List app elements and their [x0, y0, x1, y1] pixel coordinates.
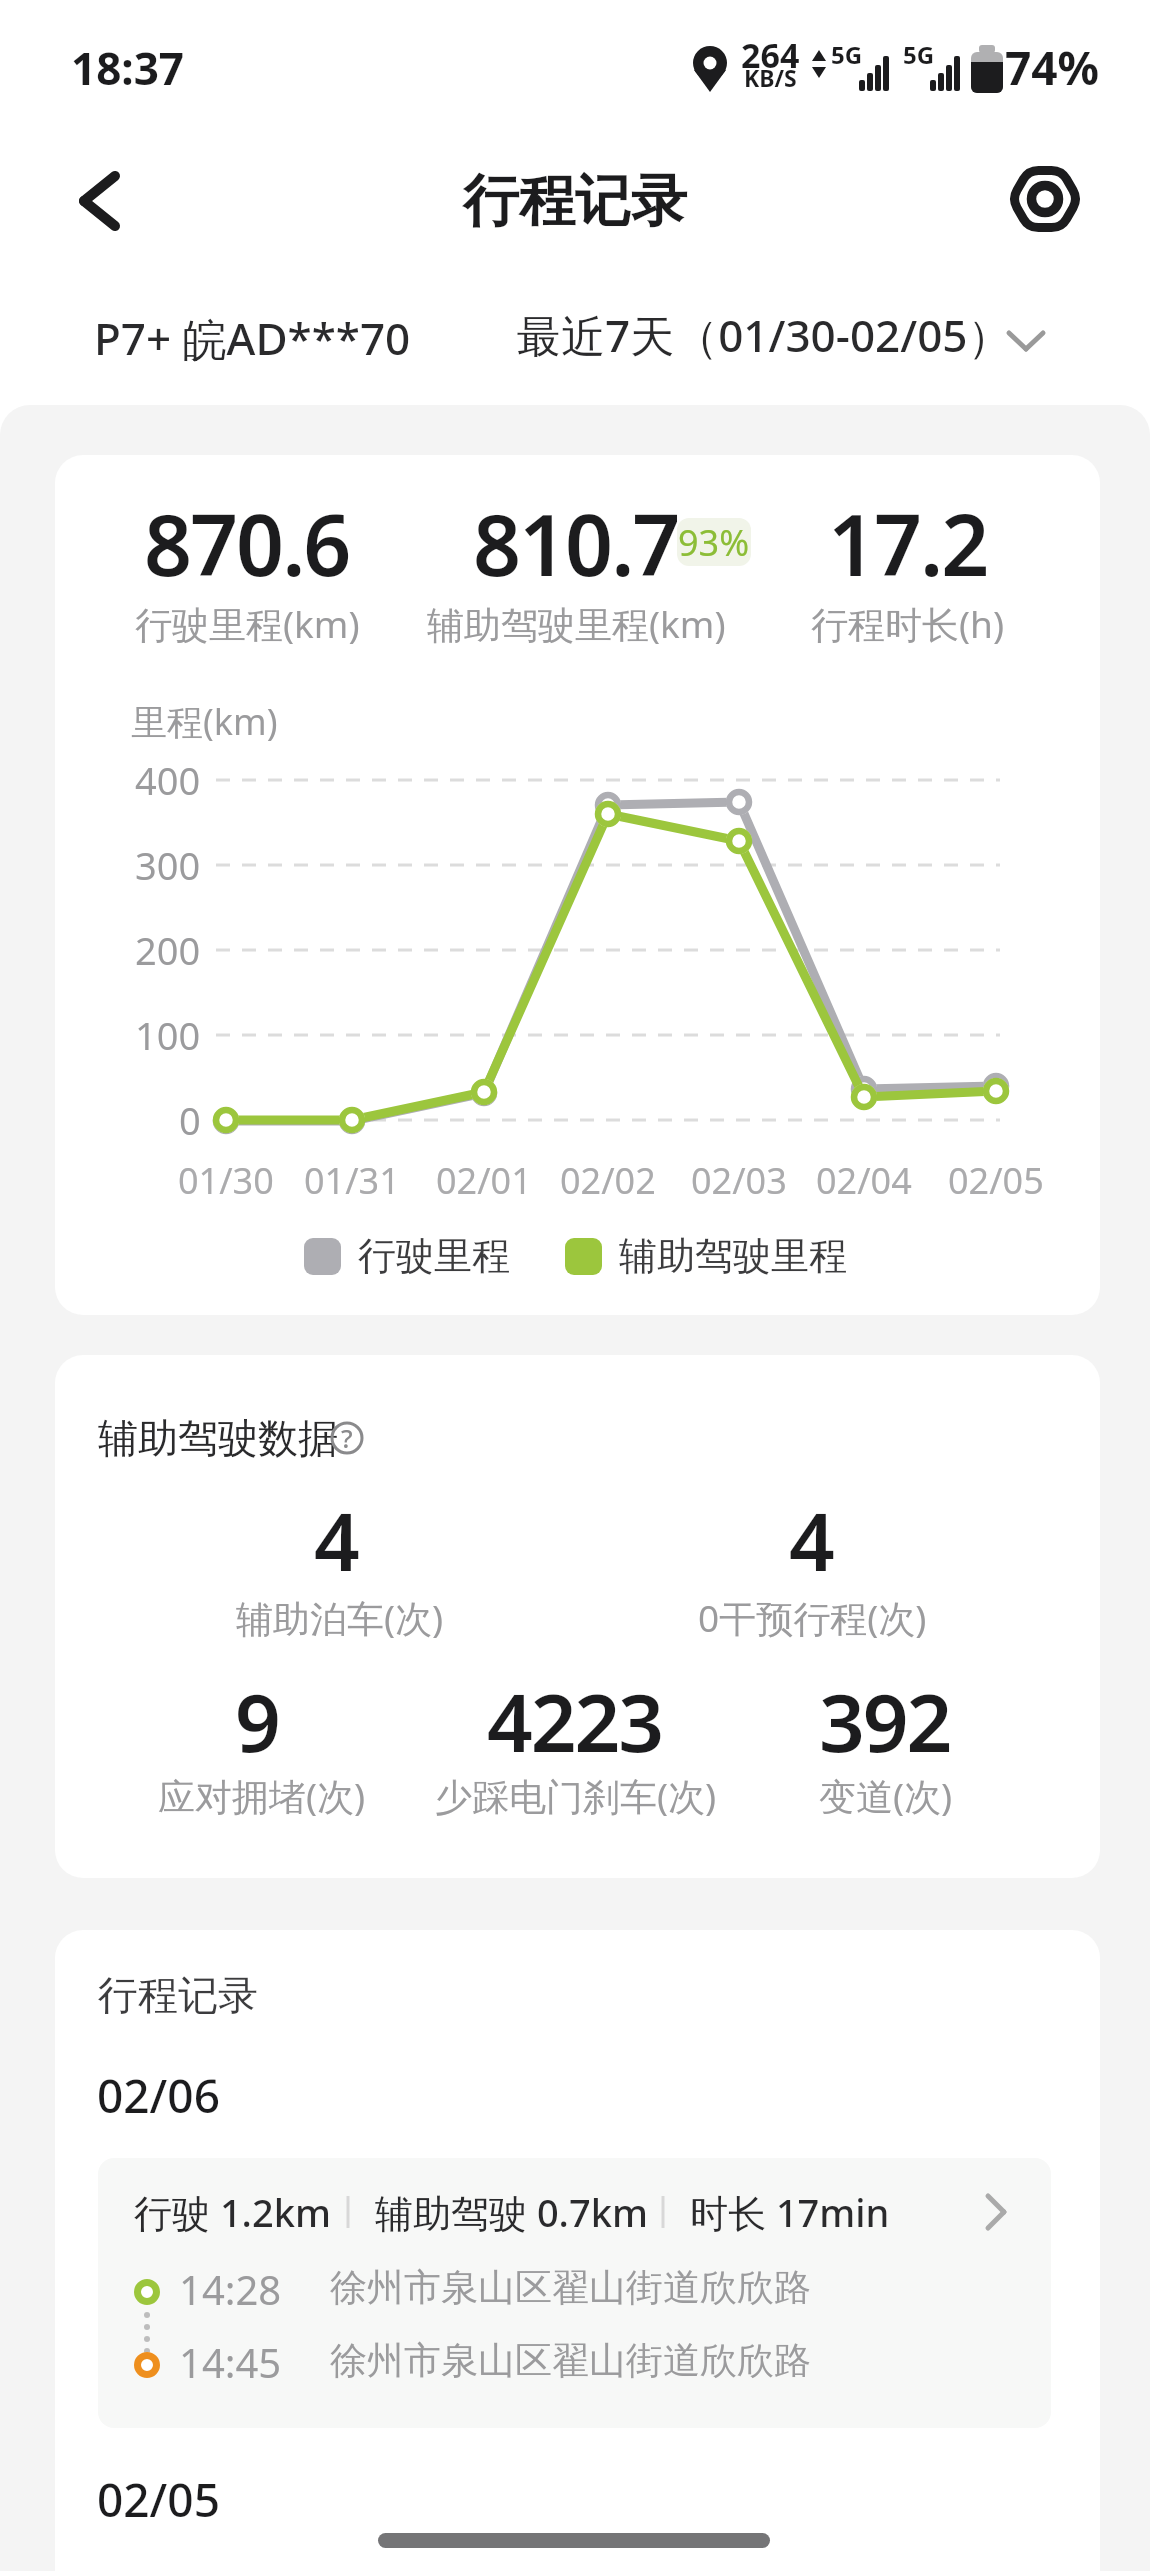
button[interactable]: [1005, 159, 1085, 239]
staticText: ?: [341, 1420, 353, 1455]
staticText: 少踩电门刹车(次): [435, 1770, 717, 1821]
staticText: 14:28: [179, 2262, 282, 2316]
staticText: 02/04: [816, 1156, 912, 1205]
staticText: 变道(次): [819, 1770, 953, 1821]
staticText: 5G: [831, 38, 863, 71]
staticText: 18:37: [71, 38, 185, 98]
staticText: 17.2: [828, 486, 988, 600]
staticText: 徐州市泉山区翟山街道欣欣路: [330, 2264, 811, 2311]
staticText: 辅助泊车(次): [236, 1592, 444, 1643]
staticText: 02/05: [948, 1156, 1044, 1205]
staticText: 02/05: [97, 2468, 220, 2531]
staticText: 辅助驾驶 0.7km: [375, 2186, 648, 2238]
staticText: 01/31: [304, 1156, 400, 1205]
staticText: 02/03: [691, 1156, 787, 1205]
staticText: 392: [819, 1666, 951, 1775]
staticText: 14:45: [179, 2335, 282, 2389]
staticText: 应对拥堵(次): [158, 1770, 366, 1821]
button[interactable]: 最近7天（01/30-02/05）: [500, 295, 1060, 375]
button[interactable]: [98, 2158, 1051, 2428]
staticText: 徐州市泉山区翟山街道欣欣路: [330, 2337, 811, 2384]
staticText: 辅助驾驶里程(km): [427, 598, 726, 649]
staticText: 行驶里程: [358, 1232, 510, 1280]
staticText: 400: [135, 754, 201, 806]
staticText: 行程记录: [463, 166, 687, 237]
staticText: 辅助驾驶里程: [619, 1232, 847, 1280]
staticText: 9: [235, 1666, 281, 1775]
staticText: 行驶 1.2km: [134, 2186, 331, 2238]
staticText: 02/06: [97, 2064, 220, 2127]
staticText: 5G: [903, 38, 935, 71]
staticText: 01/30: [178, 1156, 274, 1205]
staticText: 870.6: [144, 486, 350, 600]
staticText: 264: [741, 32, 800, 78]
staticText: P7+ 皖AD***70: [94, 308, 411, 368]
staticText: 最近7天（01/30-02/05）: [517, 305, 1012, 365]
staticText: 0干预行程(次): [698, 1592, 927, 1643]
staticText: 74%: [1005, 36, 1100, 99]
staticText: 辅助驾驶数据: [98, 1413, 338, 1463]
staticText: 0: [179, 1094, 201, 1146]
staticText: 4: [789, 1485, 835, 1594]
staticText: 200: [135, 924, 201, 976]
staticText: 02/01: [436, 1156, 532, 1205]
staticText: 行驶里程(km): [135, 598, 360, 649]
staticText: 100: [135, 1009, 201, 1061]
staticText: KB/S: [744, 62, 797, 93]
staticText: 4: [314, 1485, 360, 1594]
staticText: 时长 17min: [690, 2186, 890, 2238]
staticText: 里程(km): [131, 697, 278, 746]
button[interactable]: [55, 160, 135, 240]
staticText: 行程时长(h): [811, 598, 1005, 649]
staticText: 02/02: [560, 1156, 656, 1205]
staticText: 810.7: [473, 486, 679, 600]
staticText: 93%: [678, 518, 750, 566]
staticText: 300: [135, 839, 201, 891]
staticText: 4223: [487, 1666, 663, 1775]
staticText: 行程记录: [98, 1970, 258, 2020]
